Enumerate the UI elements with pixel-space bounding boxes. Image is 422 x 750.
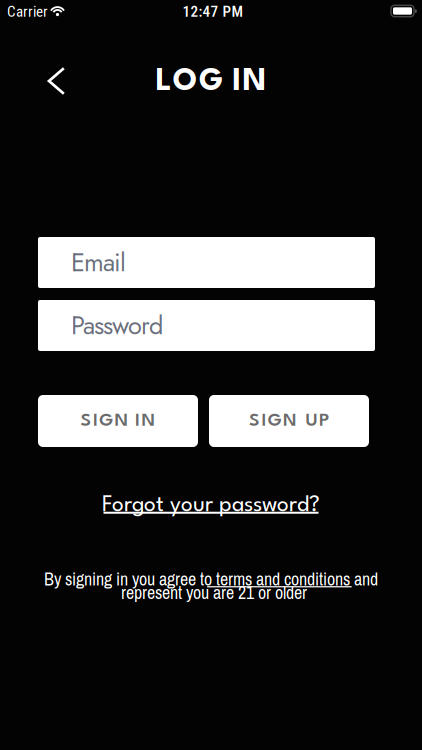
staticText: S xyxy=(81,412,92,430)
staticText: By signing in you agree to terms and con… xyxy=(44,567,378,591)
staticText: N xyxy=(242,67,266,97)
staticText: I xyxy=(232,67,241,97)
button[interactable]: By signing in you agree to terms and con… xyxy=(44,571,378,601)
staticText: N xyxy=(141,412,155,430)
staticText: Carrier xyxy=(7,3,48,20)
staticText: O xyxy=(173,67,198,97)
button[interactable]: Back xyxy=(0,57,84,107)
staticText: G xyxy=(99,412,113,430)
staticText: Password xyxy=(71,307,163,344)
staticText: S xyxy=(249,412,260,430)
staticText: L xyxy=(155,67,171,97)
staticText: P xyxy=(319,412,329,430)
staticText: N xyxy=(283,412,297,430)
staticText: U xyxy=(306,412,318,430)
staticText: Forgot your password? xyxy=(102,495,320,516)
staticText: Email xyxy=(71,244,126,281)
staticText: I xyxy=(135,412,140,430)
button[interactable]: Email xyxy=(38,237,375,288)
button[interactable]: Password xyxy=(38,300,375,351)
staticText: G xyxy=(199,67,223,97)
staticText: I xyxy=(93,412,98,430)
staticText: G xyxy=(268,412,282,430)
staticText: 12:47 PM xyxy=(182,3,243,20)
staticText: I xyxy=(261,412,266,430)
staticText: represent you are 21 or older xyxy=(121,580,307,604)
staticText: N xyxy=(114,412,128,430)
button[interactable]: S xyxy=(209,395,369,447)
button[interactable]: S xyxy=(38,395,198,447)
button[interactable]: Forgot your password? xyxy=(96,492,326,519)
